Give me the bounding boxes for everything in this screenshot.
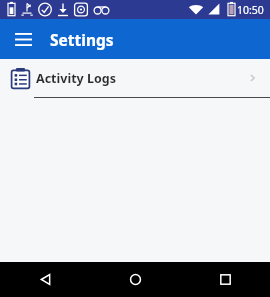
button[interactable]: Back — [0, 262, 90, 297]
staticText: 10:50 — [237, 3, 264, 17]
button[interactable]: Open navigation menu — [8, 24, 38, 54]
button[interactable]: Recent apps — [180, 262, 270, 297]
staticText: Activity Logs — [36, 70, 116, 87]
staticText: Settings — [50, 29, 114, 50]
button[interactable]: Activity Logs — [0, 59, 270, 97]
button[interactable]: Home — [90, 262, 180, 297]
